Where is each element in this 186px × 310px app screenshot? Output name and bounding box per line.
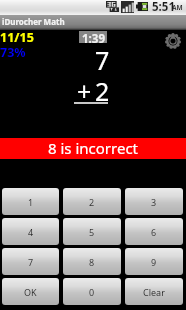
button[interactable]: Settings	[165, 33, 181, 49]
staticText: 11/15	[0, 29, 34, 46]
button[interactable]: 9	[125, 248, 183, 275]
staticText: 1:39	[82, 31, 105, 43]
staticText: 7	[28, 256, 34, 268]
staticText: 8	[89, 256, 95, 268]
staticText: 6	[151, 226, 157, 238]
staticText: 5:51	[152, 0, 175, 14]
button[interactable]: 7	[2, 248, 59, 275]
staticText: 7	[95, 43, 110, 77]
staticText: 2	[95, 74, 110, 108]
staticText: +	[77, 74, 92, 108]
staticText: 4	[28, 226, 34, 238]
button[interactable]: 2	[63, 188, 121, 215]
staticText: 1	[28, 196, 34, 208]
staticText: 5	[89, 226, 95, 238]
staticText: 2	[89, 196, 95, 208]
button[interactable]: 1	[2, 188, 59, 215]
staticText: AM	[172, 3, 183, 12]
staticText: OK	[24, 286, 37, 298]
button[interactable]: OK	[2, 278, 59, 305]
staticText: 8 is incorrect	[48, 138, 139, 158]
staticText: 3	[151, 196, 157, 208]
button[interactable]: 8	[63, 248, 121, 275]
button[interactable]: 3	[125, 188, 183, 215]
button[interactable]: 5	[63, 218, 121, 245]
button[interactable]: 4	[2, 218, 59, 245]
button[interactable]: 6	[125, 218, 183, 245]
staticText: Clear	[143, 286, 165, 298]
button[interactable]: 0	[63, 278, 121, 305]
staticText: 73%	[0, 44, 26, 61]
staticText: 9	[151, 256, 157, 268]
staticText: 0	[89, 286, 95, 298]
staticText: iDurocher Math	[2, 16, 65, 27]
button[interactable]: Clear	[125, 278, 183, 305]
